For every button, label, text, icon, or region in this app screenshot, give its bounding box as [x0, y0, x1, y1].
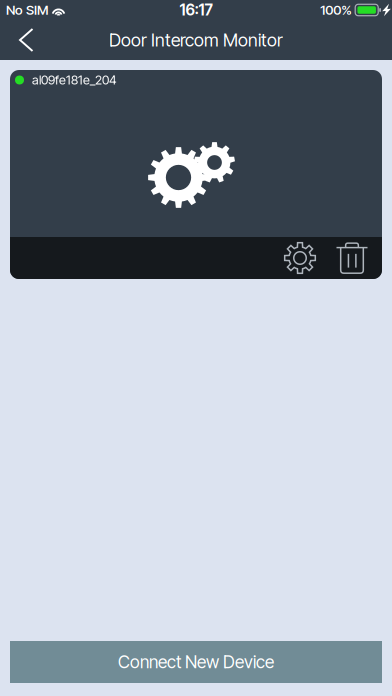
button[interactable]: Back — [0, 20, 48, 60]
staticText: Connect New Device — [118, 651, 274, 672]
staticText: al09fe181e_204 — [32, 72, 117, 88]
staticText: 16:17 — [179, 1, 212, 19]
button[interactable]: Settings — [279, 237, 321, 279]
staticText: 100% — [320, 2, 352, 18]
staticText: Door Intercom Monitor — [109, 29, 283, 51]
button[interactable]: Delete — [331, 237, 373, 279]
staticText: No SIM — [6, 2, 49, 18]
button[interactable]: Connect New Device — [10, 641, 382, 683]
